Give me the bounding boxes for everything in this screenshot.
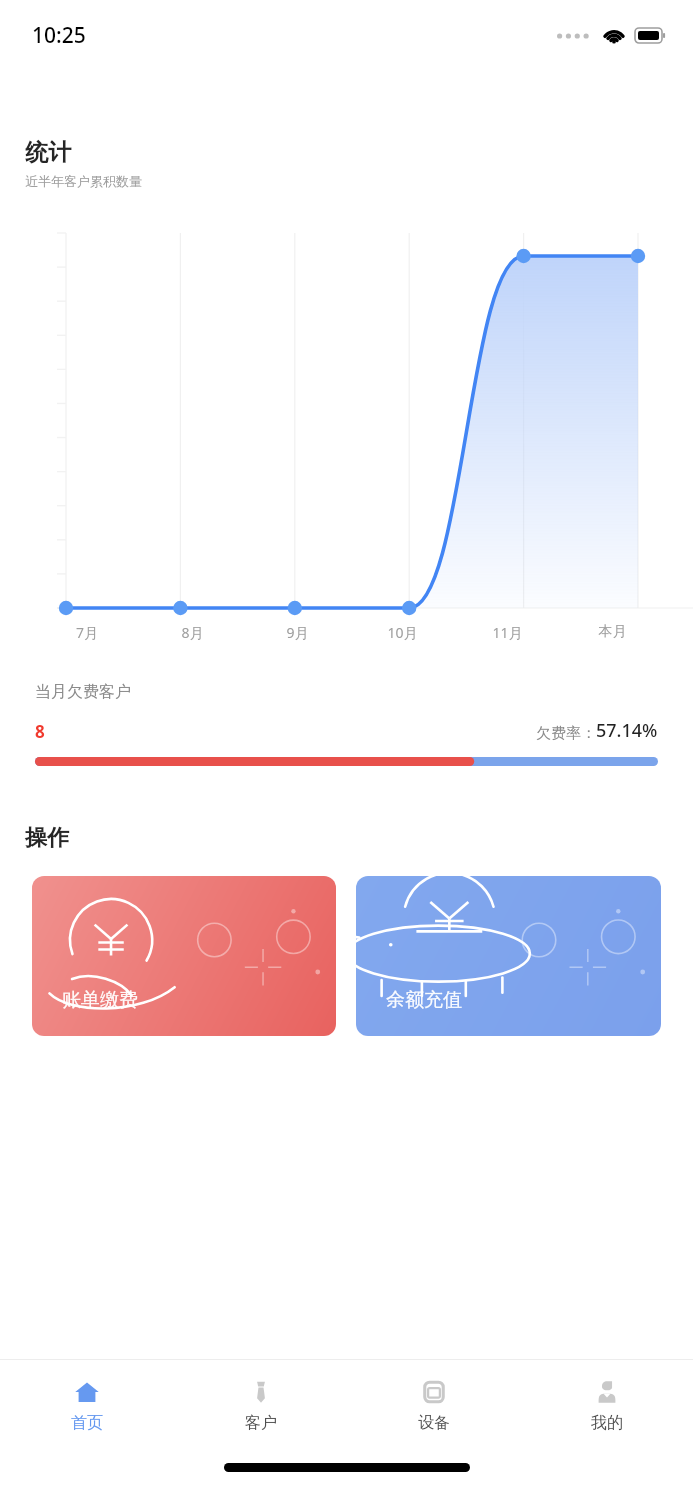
staticText: 操作 bbox=[25, 824, 69, 852]
button[interactable]: 账单缴费 bbox=[32, 876, 336, 1036]
button[interactable]: 当月欠费客户 bbox=[15, 660, 678, 788]
staticText: 余额充值 bbox=[386, 988, 462, 1012]
button[interactable]: 余额充值 bbox=[356, 876, 661, 1036]
button[interactable]: 设备 bbox=[347, 1360, 520, 1455]
staticText: 8月 bbox=[140, 623, 245, 642]
staticText: 欠费率： bbox=[536, 724, 596, 743]
staticText: 10:25 bbox=[32, 21, 86, 50]
staticText: 10月 bbox=[350, 623, 455, 642]
staticText: 7月 bbox=[34, 623, 140, 642]
button[interactable]: 我的 bbox=[520, 1360, 693, 1455]
button[interactable]: 客户 bbox=[174, 1360, 347, 1455]
staticText: 57.14% bbox=[596, 718, 658, 743]
staticText: 11月 bbox=[455, 623, 560, 642]
staticText: 8 bbox=[35, 720, 45, 743]
staticText: 设备 bbox=[418, 1413, 450, 1433]
staticText: 账单缴费 bbox=[62, 988, 138, 1012]
staticText: 我的 bbox=[591, 1413, 623, 1433]
staticText: 近半年客户累积数量 bbox=[25, 173, 142, 189]
staticText: 统计 bbox=[25, 138, 71, 167]
staticText: 9月 bbox=[245, 623, 350, 642]
staticText: 本月 bbox=[560, 623, 665, 641]
button[interactable]: 首页 bbox=[0, 1360, 174, 1455]
staticText: 客户 bbox=[245, 1413, 277, 1433]
staticText: 当月欠费客户 bbox=[35, 682, 131, 702]
staticText: 首页 bbox=[71, 1413, 103, 1433]
